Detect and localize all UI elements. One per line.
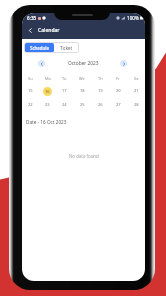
staticText: 22 <box>28 102 33 108</box>
staticText: 16 <box>45 89 50 95</box>
staticText: No data found <box>69 153 99 159</box>
staticText: 28 <box>134 102 139 108</box>
staticText: 100% <box>127 15 139 21</box>
staticText: Th <box>98 76 103 81</box>
staticText: Date - 16 Oct 2023 <box>26 119 67 125</box>
staticText: 18 <box>80 88 85 94</box>
button[interactable]: Next month <box>120 60 127 67</box>
staticText: Ticket <box>60 45 73 51</box>
staticText: 23 <box>45 102 50 108</box>
staticText: Calendar <box>38 27 60 34</box>
staticText: 20 <box>116 88 121 94</box>
staticText: Sa <box>134 76 139 81</box>
staticText: Schedule <box>30 45 50 51</box>
staticText: We <box>79 76 85 81</box>
button[interactable]: Back <box>25 25 36 36</box>
staticText: 17 <box>62 88 67 94</box>
staticText: Tu <box>62 76 67 81</box>
staticText: 26 <box>98 102 103 108</box>
button[interactable]: Schedule <box>25 43 54 52</box>
button[interactable]: Ticket <box>54 42 79 53</box>
staticText: 19 <box>98 88 103 94</box>
staticText: Fr <box>116 76 120 81</box>
staticText: 24 <box>62 102 67 108</box>
button[interactable]: Previous month <box>38 60 45 67</box>
staticText: 27 <box>116 102 121 108</box>
staticText: Su <box>28 76 33 81</box>
staticText: October 2023 <box>68 60 99 66</box>
staticText: Mo <box>45 76 51 81</box>
staticText: 21 <box>134 88 139 94</box>
button[interactable]: 16 <box>43 87 52 96</box>
staticText: 15 <box>28 88 33 94</box>
staticText: 25 <box>80 102 85 108</box>
staticText: 6:35 <box>27 15 37 21</box>
